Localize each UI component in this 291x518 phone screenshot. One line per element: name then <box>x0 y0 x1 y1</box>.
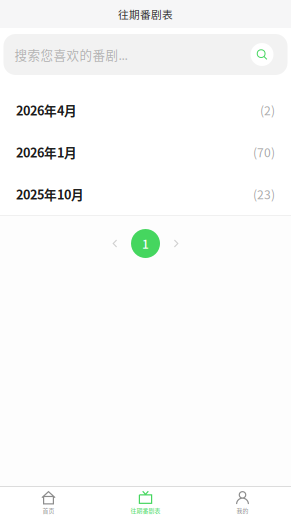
staticText: 2026年1月 <box>16 143 77 161</box>
staticText: 我的 <box>236 506 248 515</box>
button[interactable]: 2025年10月 <box>0 173 291 215</box>
staticText: 搜索您喜欢的番剧... <box>14 45 127 63</box>
button[interactable]: 首页 <box>0 487 97 518</box>
button[interactable]: 2026年1月 <box>0 131 291 173</box>
button[interactable]: 上一页 <box>99 229 131 258</box>
staticText: (2) <box>260 101 275 119</box>
staticText: 2025年10月 <box>16 185 84 203</box>
staticText: (23) <box>253 185 275 203</box>
button[interactable]: 我的 <box>194 487 291 518</box>
staticText: 首页 <box>42 506 54 515</box>
staticText: 往期番剧表 <box>130 506 160 515</box>
staticText: 往期番剧表 <box>118 6 173 22</box>
staticText: (70) <box>253 143 275 161</box>
staticText: 2026年4月 <box>16 101 77 119</box>
button[interactable]: 2026年4月 <box>0 89 291 131</box>
button[interactable]: 搜索您喜欢的番剧... <box>3 34 287 75</box>
staticText: 1 <box>142 235 149 252</box>
button[interactable]: 下一页 <box>160 229 192 258</box>
button[interactable]: 往期番剧表 <box>97 487 194 518</box>
